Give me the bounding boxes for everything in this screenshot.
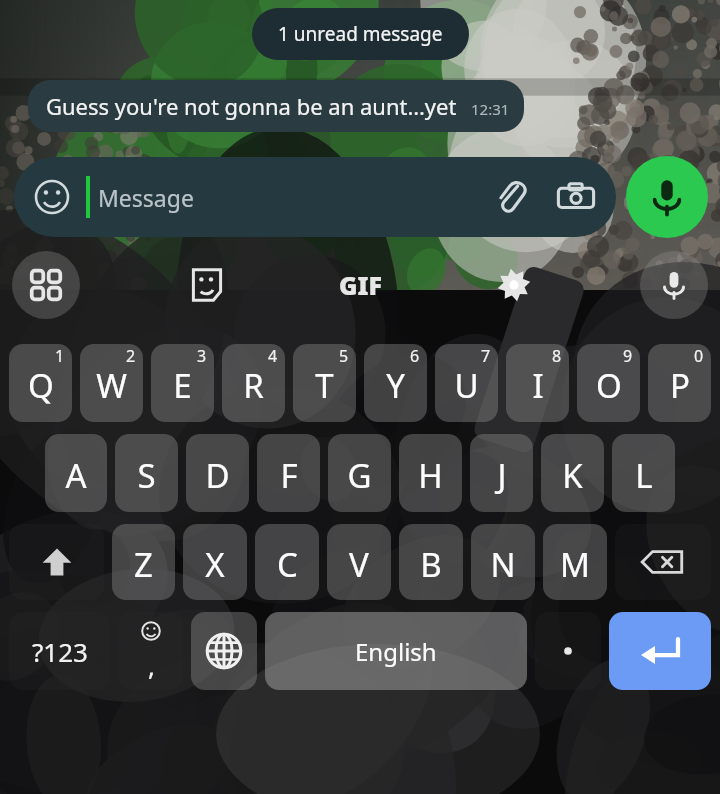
button[interactable]: R xyxy=(222,344,285,422)
staticText: J xyxy=(497,453,507,498)
staticText: H xyxy=(418,453,443,498)
button[interactable]: A xyxy=(45,434,107,512)
button[interactable]: Attach file xyxy=(490,176,532,218)
staticText: S xyxy=(137,453,156,498)
button[interactable]: Emoji xyxy=(32,177,72,217)
button[interactable]: Camera xyxy=(554,175,598,219)
staticText: 0 xyxy=(694,345,704,367)
button[interactable]: Z xyxy=(112,524,175,600)
button[interactable]: G xyxy=(328,434,391,512)
staticText: M xyxy=(560,542,590,587)
staticText: Message xyxy=(98,182,194,213)
button[interactable]: English xyxy=(265,612,527,690)
button[interactable]: O xyxy=(577,344,640,422)
staticText: I xyxy=(532,363,544,408)
staticText: C xyxy=(277,542,298,587)
staticText: 1 unread message xyxy=(278,21,443,47)
button[interactable]: Voice message xyxy=(626,156,708,238)
staticText: U xyxy=(454,363,479,408)
staticText: 1 xyxy=(55,345,65,367)
staticText: 4 xyxy=(268,345,278,367)
staticText: A xyxy=(65,453,87,498)
staticText: Q xyxy=(28,363,54,408)
staticText: , xyxy=(148,648,155,683)
button[interactable]: K xyxy=(541,434,604,512)
staticText: 7 xyxy=(481,345,491,367)
staticText: 8 xyxy=(552,345,562,367)
staticText: 3 xyxy=(197,345,207,367)
button[interactable]: Backspace xyxy=(615,524,711,600)
button[interactable]: L xyxy=(612,434,675,512)
button[interactable]: B xyxy=(399,524,463,600)
button[interactable]: Y xyxy=(364,344,427,422)
staticText: E xyxy=(173,363,192,408)
staticText: K xyxy=(562,453,583,498)
staticText: D xyxy=(205,453,230,498)
staticText: L xyxy=(635,453,653,498)
button[interactable]: GIF xyxy=(333,262,388,308)
button[interactable]: Q xyxy=(9,344,72,422)
staticText: English xyxy=(355,635,437,668)
staticText: 12:31 xyxy=(471,99,510,119)
staticText: 6 xyxy=(410,345,420,367)
button[interactable]: N xyxy=(471,524,535,600)
button[interactable]: E xyxy=(151,344,214,422)
staticText: Z xyxy=(134,542,153,587)
staticText: F xyxy=(280,453,298,498)
button[interactable]: X xyxy=(183,524,247,600)
button[interactable]: H xyxy=(399,434,462,512)
staticText: ?123 xyxy=(32,634,88,669)
button[interactable]: I xyxy=(506,344,569,422)
button[interactable]: V xyxy=(327,524,391,600)
staticText: B xyxy=(420,542,442,587)
button[interactable]: Voice input xyxy=(640,251,708,319)
staticText: GIF xyxy=(339,268,382,302)
button[interactable]: ?123 xyxy=(9,612,110,690)
button[interactable]: J xyxy=(470,434,533,512)
button[interactable]: Emoji xyxy=(14,157,616,237)
button[interactable]: Keyboard modes xyxy=(12,251,80,319)
staticText: T xyxy=(315,363,334,408)
button[interactable]: S xyxy=(115,434,178,512)
button[interactable]: W xyxy=(80,344,143,422)
staticText: W xyxy=(96,363,127,408)
button[interactable]: Change language xyxy=(191,612,257,690)
button[interactable]: C xyxy=(255,524,319,600)
staticText: P xyxy=(670,363,690,408)
staticText: V xyxy=(349,542,369,587)
button[interactable]: T xyxy=(293,344,356,422)
button[interactable]: Enter xyxy=(609,612,711,690)
button[interactable]: Settings xyxy=(486,257,542,313)
button[interactable]: M xyxy=(543,524,607,600)
staticText: Guess you're not gonna be an aunt…yet xyxy=(46,91,457,121)
staticText: 2 xyxy=(126,345,136,367)
button[interactable]: Guess you're not gonna be an aunt…yet xyxy=(28,80,524,132)
button[interactable]: D xyxy=(186,434,249,512)
button[interactable]: Shift xyxy=(9,524,104,600)
button[interactable]: Stickers xyxy=(179,257,235,313)
staticText: 5 xyxy=(339,345,349,367)
staticText: Y xyxy=(386,363,405,408)
button[interactable]: Emoji and comma xyxy=(118,612,183,690)
button[interactable]: Period xyxy=(535,612,601,690)
staticText: N xyxy=(490,542,516,587)
button[interactable]: P xyxy=(648,344,711,422)
staticText: X xyxy=(205,542,225,587)
button[interactable]: F xyxy=(257,434,320,512)
staticText: 9 xyxy=(623,345,633,367)
button[interactable]: 1 unread message xyxy=(252,8,469,60)
staticText: R xyxy=(243,363,264,408)
button[interactable]: U xyxy=(435,344,498,422)
staticText: G xyxy=(347,453,372,498)
staticText: O xyxy=(596,363,622,408)
